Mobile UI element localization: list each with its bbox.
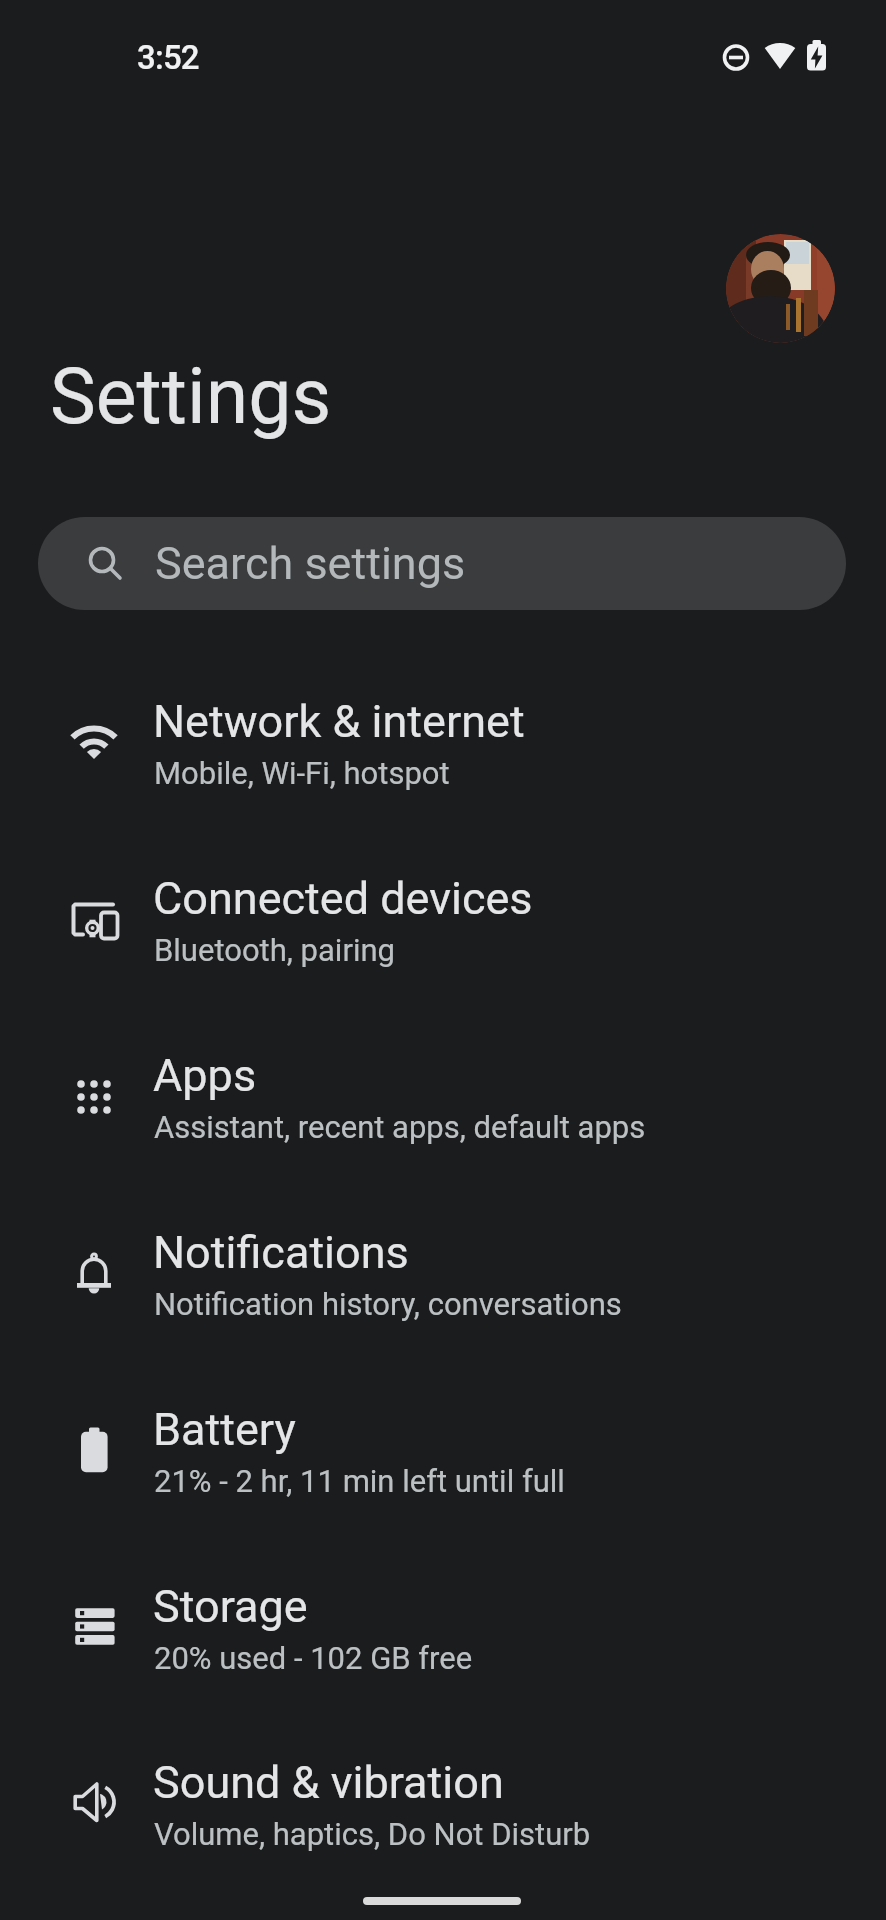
button[interactable]: Connected devices — [0, 837, 886, 1014]
button[interactable] — [726, 234, 835, 343]
staticText: Connected devices — [153, 872, 533, 925]
button[interactable]: Storage — [0, 1545, 886, 1722]
staticText: Bluetooth, pairing — [154, 932, 395, 968]
staticText: Sound & vibration — [153, 1756, 504, 1809]
button[interactable]: Notifications — [0, 1191, 886, 1368]
staticText: Apps — [153, 1049, 257, 1102]
staticText: 3:52 — [137, 38, 199, 77]
staticText: 21% - 2 hr, 11 min left until full — [154, 1463, 565, 1499]
button[interactable]: Apps — [0, 1014, 886, 1191]
staticText: Storage — [153, 1580, 308, 1633]
button[interactable]: Search settings — [38, 517, 846, 610]
staticText: Notifications — [153, 1226, 409, 1279]
staticText: Battery — [153, 1403, 296, 1456]
button[interactable]: Battery — [0, 1368, 886, 1545]
staticText: 20% used - 102 GB free — [154, 1640, 473, 1676]
staticText: Volume, haptics, Do Not Disturb — [154, 1816, 591, 1852]
button[interactable]: Sound & vibration — [0, 1721, 886, 1898]
staticText: Network & internet — [153, 695, 525, 748]
button[interactable]: Network & internet — [0, 660, 886, 837]
staticText: Notification history, conversations — [154, 1286, 622, 1322]
staticText: Assistant, recent apps, default apps — [154, 1109, 646, 1145]
staticText: Mobile, Wi-Fi, hotspot — [154, 755, 450, 791]
staticText: Search settings — [155, 537, 466, 590]
staticText: Settings — [50, 352, 332, 442]
button[interactable] — [363, 1897, 521, 1905]
